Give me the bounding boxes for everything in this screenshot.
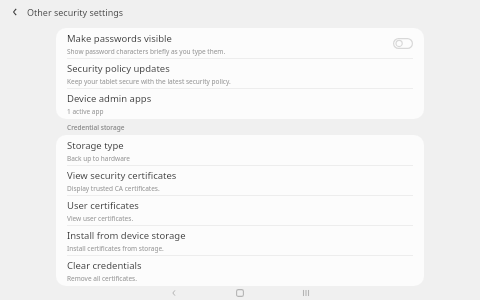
staticText: Make passwords visible	[67, 32, 172, 45]
staticText: Back up to hardware	[67, 154, 131, 163]
button[interactable]: Make passwords visible	[56, 29, 424, 59]
staticText: Clear credentials	[67, 259, 142, 272]
staticText: Storage type	[67, 139, 124, 152]
staticText: Keep your tablet secure with the latest …	[67, 77, 231, 86]
staticText: Other security settings	[27, 6, 124, 18]
button[interactable]: Storage type	[56, 136, 424, 166]
staticText: Security policy updates	[67, 62, 170, 75]
staticText: Install from device storage	[67, 229, 186, 242]
button[interactable]: Device admin apps	[56, 89, 424, 118]
button[interactable]: Install from device storage	[56, 226, 424, 256]
button[interactable]: Back	[6, 3, 24, 21]
staticText: User certificates	[67, 199, 139, 212]
button[interactable]: View security certificates	[56, 166, 424, 196]
staticText: Credential storage	[67, 123, 125, 132]
staticText: Display trusted CA certificates.	[67, 184, 160, 193]
staticText: Remove all certificates.	[67, 274, 137, 283]
button[interactable]: User certificates	[56, 196, 424, 226]
button[interactable]: Clear credentials	[56, 256, 424, 285]
button[interactable]: Back	[141, 286, 207, 300]
button[interactable]: Home	[207, 286, 273, 300]
button[interactable]: Recent apps	[273, 286, 339, 300]
staticText: Device admin apps	[67, 92, 152, 105]
staticText: 1 active app	[67, 107, 104, 116]
staticText: Show password characters briefly as you …	[67, 47, 226, 56]
button[interactable]: Security policy updates	[56, 59, 424, 89]
staticText: Install certificates from storage.	[67, 244, 164, 253]
staticText: View security certificates	[67, 169, 177, 182]
button[interactable]: Make passwords visible toggle	[393, 38, 413, 49]
staticText: View user certificates.	[67, 214, 134, 223]
